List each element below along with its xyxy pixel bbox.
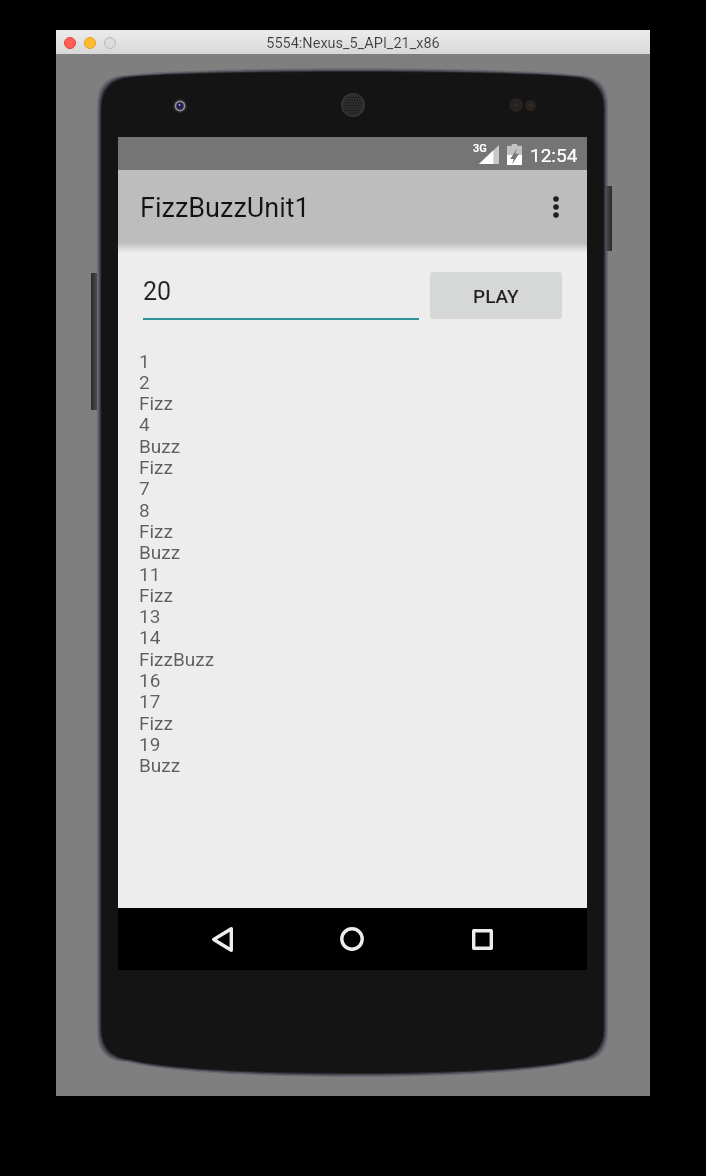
staticText: PLAY: [473, 285, 519, 307]
staticText: Buzz: [139, 754, 181, 776]
staticText: Fizz: [139, 392, 173, 414]
staticText: 11: [139, 563, 161, 585]
staticText: Buzz: [139, 435, 181, 457]
staticText: 19: [139, 733, 161, 755]
button[interactable]: Home: [328, 908, 376, 970]
button[interactable]: More options: [531, 170, 580, 243]
staticText: Fizz: [139, 456, 173, 478]
staticText: Fizz: [139, 712, 173, 734]
staticText: FizzBuzz: [139, 648, 215, 670]
staticText: 4: [139, 413, 150, 435]
staticText: 3G: [473, 142, 487, 155]
staticText: FizzBuzzUnit1: [140, 192, 310, 224]
staticText: 8: [139, 499, 150, 521]
staticText: 7: [139, 477, 150, 499]
staticText: 13: [139, 605, 161, 627]
staticText: 5554:Nexus_5_API_21_x86: [56, 35, 650, 52]
button[interactable]: Recents: [458, 908, 506, 970]
button[interactable]: PLAY: [430, 272, 562, 319]
staticText: 2: [139, 371, 150, 393]
staticText: Fizz: [139, 520, 173, 542]
staticText: Buzz: [139, 541, 181, 563]
staticText: 16: [139, 669, 161, 691]
staticText: 20: [143, 277, 172, 306]
button[interactable]: 20: [143, 267, 419, 320]
staticText: 14: [139, 626, 161, 648]
staticText: 12:54: [530, 144, 578, 166]
staticText: 17: [139, 690, 161, 712]
button[interactable]: Back: [198, 908, 246, 970]
staticText: Fizz: [139, 584, 173, 606]
staticText: 1: [139, 350, 150, 372]
